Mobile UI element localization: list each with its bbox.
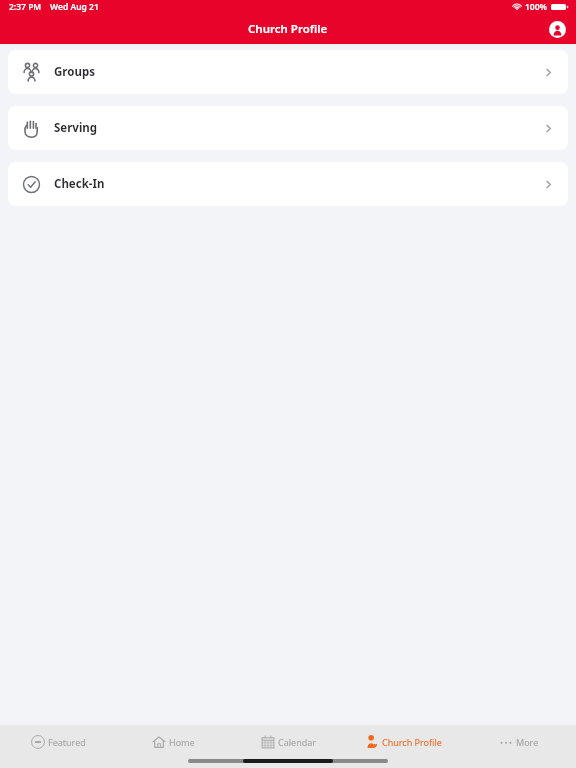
button[interactable]: Serving (8, 106, 568, 150)
staticText: Calendar (278, 736, 316, 748)
staticText: Featured (48, 736, 86, 748)
staticText: 2:37 PM (9, 1, 42, 13)
staticText: Groups (54, 64, 95, 80)
staticText: Serving (54, 120, 98, 136)
button[interactable]: Home (116, 725, 231, 758)
button[interactable]: Featured (0, 725, 116, 758)
staticText: Wed Aug 21 (50, 1, 99, 13)
button[interactable]: Check-In (8, 162, 568, 206)
staticText: More (516, 736, 539, 748)
staticText: Church Profile (248, 21, 328, 37)
staticText: Church Profile (382, 736, 442, 748)
button[interactable]: Church Profile (346, 725, 461, 758)
staticText: Home (169, 736, 195, 748)
button[interactable]: Groups (8, 50, 568, 94)
staticText: Check-In (54, 176, 105, 192)
button[interactable]: More (461, 725, 576, 758)
button[interactable]: Account (544, 16, 570, 42)
button[interactable]: Calendar (231, 725, 346, 758)
staticText: 100% (525, 1, 548, 13)
